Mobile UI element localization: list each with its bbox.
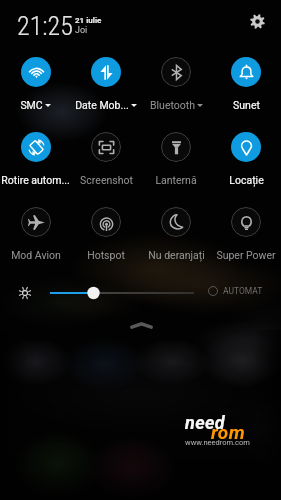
button[interactable]: Date Mob... xyxy=(71,57,141,111)
button[interactable]: SMC xyxy=(0,57,71,111)
staticText: AUTOMAT xyxy=(223,286,263,296)
staticText: Hotspot xyxy=(87,249,125,261)
staticText: Super Power xyxy=(216,249,276,261)
button[interactable]: Super Power xyxy=(211,207,281,261)
staticText: Locație xyxy=(229,174,264,186)
staticText: Mod Avion xyxy=(11,249,61,261)
staticText: Lanternă xyxy=(155,174,197,186)
button[interactable]: Screenshot xyxy=(71,132,141,186)
staticText: Nu deranjați xyxy=(148,249,205,261)
staticText: 21:25 xyxy=(17,11,73,41)
staticText: www.needrom.com xyxy=(185,438,250,447)
button[interactable]: Hotspot xyxy=(71,207,141,261)
staticText: rom xyxy=(211,421,246,443)
button[interactable]: Nu deranjați xyxy=(141,207,211,261)
button[interactable]: Sunet xyxy=(211,57,281,111)
button[interactable]: Mod Avion xyxy=(0,207,71,261)
staticText: SMC xyxy=(20,99,43,111)
staticText: 21 iulie xyxy=(75,16,102,25)
staticText: Sunet xyxy=(233,99,260,111)
button[interactable]: Rotire autom... xyxy=(0,132,71,186)
staticText: Joi xyxy=(75,25,88,36)
staticText: Rotire autom... xyxy=(1,174,70,186)
button[interactable]: AUTOMAT xyxy=(208,286,263,296)
staticText: Date Mob... xyxy=(75,99,129,111)
button[interactable]: Lanternă xyxy=(141,132,211,186)
staticText: need xyxy=(185,412,226,433)
button[interactable]: Collapse xyxy=(119,316,163,334)
staticText: Screenshot xyxy=(80,174,133,186)
staticText: Bluetooth xyxy=(150,99,195,111)
button[interactable]: Locație xyxy=(211,132,281,186)
button[interactable]: Bluetooth xyxy=(141,57,211,111)
button[interactable]: Settings xyxy=(245,8,271,34)
button[interactable]: Brightness xyxy=(19,287,31,299)
